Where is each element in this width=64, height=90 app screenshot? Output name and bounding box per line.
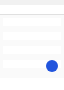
button[interactable] xyxy=(46,60,58,72)
